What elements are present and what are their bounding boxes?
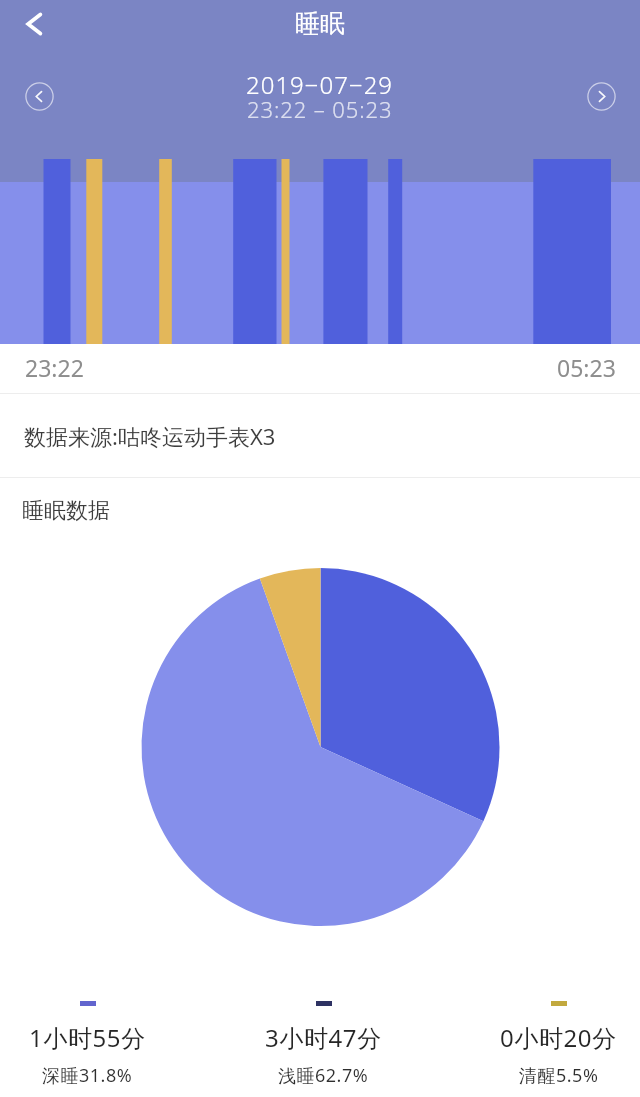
button[interactable]: 数据来源:咕咚运动手表X3 [0, 394, 640, 477]
button[interactable]: 0小时20分 [500, 990, 617, 1088]
staticText: 睡眠 [295, 8, 345, 39]
staticText: 05:23 [557, 352, 616, 383]
button[interactable]: 睡眠数据 [0, 478, 640, 540]
staticText: 清醒5.5% [519, 1063, 599, 1088]
staticText: 2019−07−29 [246, 68, 394, 101]
staticText: 浅睡62.7% [278, 1063, 369, 1088]
staticText: 23:22 – 05:23 [247, 94, 393, 124]
staticText: 1小时55分 [29, 1021, 146, 1054]
staticText: 深睡31.8% [42, 1063, 133, 1088]
button[interactable]: Previous day [25, 82, 54, 111]
button[interactable]: 3小时47分 [265, 990, 382, 1088]
staticText: 数据来源:咕咚运动手表X3 [24, 421, 276, 451]
staticText: 3小时47分 [265, 1021, 382, 1054]
button[interactable]: Next day [587, 82, 616, 111]
staticText: 0小时20分 [500, 1021, 617, 1054]
button[interactable]: Back [10, 0, 58, 48]
button[interactable]: 1小时55分 [29, 990, 146, 1088]
staticText: 睡眠数据 [22, 497, 110, 525]
staticText: 23:22 [25, 352, 84, 383]
